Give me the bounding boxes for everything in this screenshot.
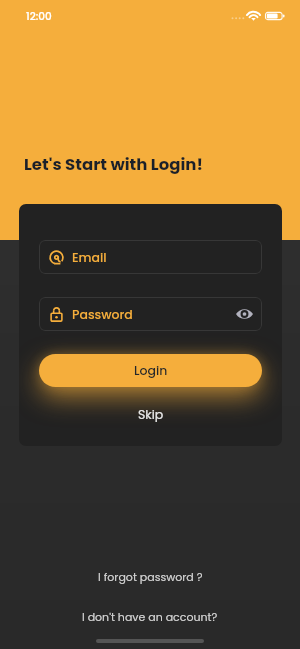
button[interactable]: Email xyxy=(39,240,262,274)
other: Show password xyxy=(236,308,253,320)
staticText: Password xyxy=(72,306,133,323)
button[interactable]: I forgot password ? xyxy=(88,565,213,588)
button[interactable]: Password xyxy=(39,297,262,331)
staticText: 12:00 xyxy=(26,9,52,24)
staticText: Email xyxy=(72,249,107,266)
staticText: Let's Start with Login! xyxy=(24,153,203,176)
staticText: Login xyxy=(134,362,168,379)
staticText: Skip xyxy=(138,406,164,423)
staticText: I don't have an account? xyxy=(82,609,218,624)
staticText: I forgot password ? xyxy=(98,569,203,584)
button[interactable]: Login xyxy=(39,354,262,387)
button[interactable]: I don't have an account? xyxy=(72,605,228,628)
button[interactable]: Skip xyxy=(128,402,174,427)
